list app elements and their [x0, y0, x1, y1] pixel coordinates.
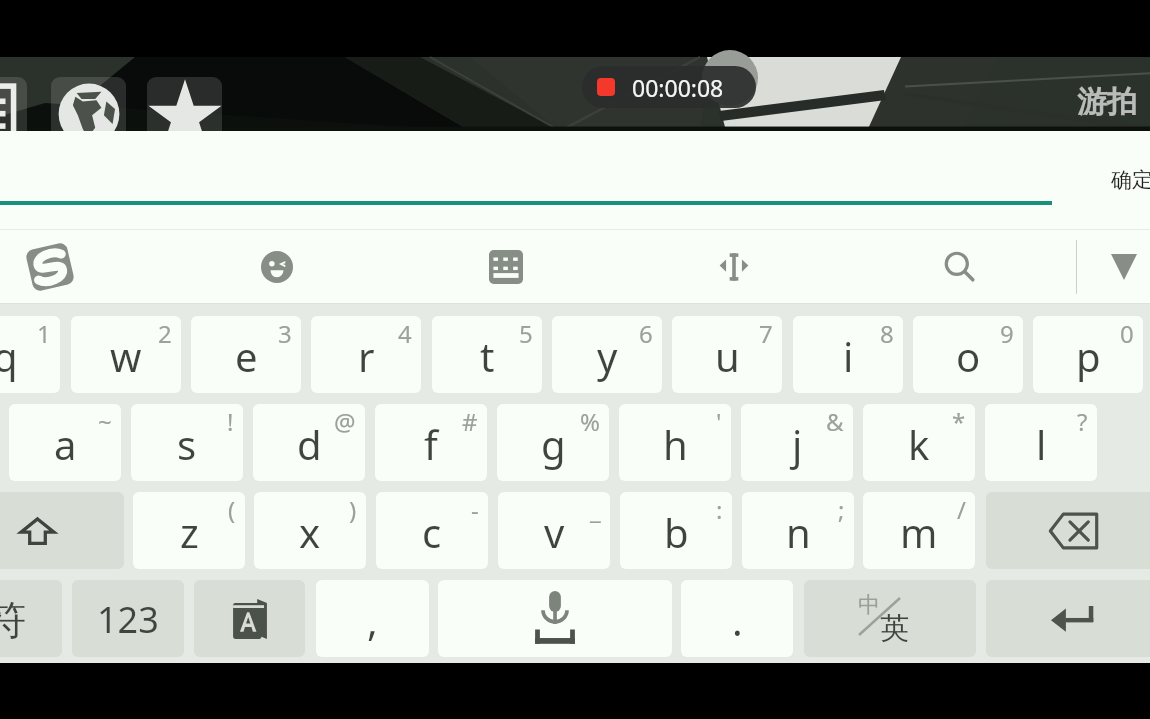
- staticText: 6: [639, 317, 653, 350]
- button[interactable]: h: [619, 404, 731, 481]
- staticText: -: [471, 493, 479, 526]
- staticText: !: [227, 405, 234, 438]
- staticText: 游拍: [1077, 83, 1137, 121]
- staticText: c: [422, 505, 442, 559]
- staticText: w: [110, 329, 142, 383]
- staticText: b: [664, 505, 689, 559]
- staticText: 符: [0, 595, 26, 645]
- staticText: /: [957, 493, 966, 526]
- staticText: ): [349, 493, 357, 526]
- button[interactable]: 确定: [1100, 153, 1150, 207]
- button[interactable]: m: [863, 492, 975, 569]
- staticText: 3: [278, 317, 292, 350]
- button[interactable]: 123: [72, 580, 184, 657]
- button[interactable]: t: [432, 316, 542, 393]
- staticText: 123: [97, 595, 159, 644]
- staticText: ~: [98, 405, 112, 438]
- button[interactable]: cn: [804, 580, 976, 657]
- staticText: k: [908, 417, 930, 471]
- staticText: d: [297, 417, 322, 471]
- button[interactable]: k: [863, 404, 975, 481]
- button[interactable]: u: [672, 316, 782, 393]
- staticText: o: [956, 329, 981, 383]
- staticText: x: [299, 505, 321, 559]
- staticText: e: [235, 329, 258, 383]
- staticText: 1: [37, 317, 51, 350]
- staticText: _: [590, 493, 601, 526]
- staticText: (: [228, 493, 236, 526]
- button[interactable]: 符: [0, 580, 62, 657]
- button[interactable]: Move cursor: [710, 243, 758, 291]
- staticText: m: [900, 505, 938, 559]
- staticText: 2: [158, 317, 172, 350]
- staticText: i: [843, 329, 854, 383]
- button[interactable]: g: [497, 404, 609, 481]
- button[interactable]: d: [253, 404, 365, 481]
- staticText: 8: [880, 317, 894, 350]
- staticText: t: [480, 329, 495, 383]
- staticText: n: [786, 505, 811, 559]
- staticText: g: [541, 417, 566, 471]
- button[interactable]: l: [985, 404, 1097, 481]
- button[interactable]: w: [71, 316, 181, 393]
- button[interactable]: .: [681, 580, 793, 657]
- button[interactable]: space: [438, 580, 672, 657]
- button[interactable]: i: [793, 316, 903, 393]
- button[interactable]: r: [311, 316, 421, 393]
- button[interactable]: f: [375, 404, 487, 481]
- staticText: a: [54, 417, 77, 471]
- button[interactable]: az: [194, 580, 305, 657]
- button[interactable]: Recording timer: [582, 66, 756, 108]
- button[interactable]: Sogou menu: [29, 246, 71, 288]
- staticText: 4: [398, 317, 412, 350]
- staticText: 5: [519, 317, 533, 350]
- button[interactable]: Hide keyboard: [1100, 243, 1148, 291]
- staticText: 确定: [1111, 167, 1150, 193]
- staticText: v: [544, 505, 565, 559]
- staticText: ;: [838, 493, 845, 526]
- button[interactable]: q: [0, 316, 60, 393]
- staticText: u: [715, 329, 740, 383]
- button[interactable]: z: [133, 492, 245, 569]
- button[interactable]: App shortcut: [0, 77, 27, 151]
- button[interactable]: Emoji: [253, 243, 301, 291]
- button[interactable]: e: [191, 316, 301, 393]
- button[interactable]: y: [552, 316, 662, 393]
- button[interactable]: b: [620, 492, 732, 569]
- staticText: #: [462, 405, 478, 438]
- staticText: q: [0, 329, 18, 383]
- staticText: ': [716, 405, 722, 438]
- staticText: ,: [367, 593, 378, 647]
- staticText: &: [826, 405, 844, 438]
- button[interactable]: j: [741, 404, 853, 481]
- staticText: f: [424, 417, 438, 471]
- staticText: h: [663, 417, 688, 471]
- button[interactable]: enter: [986, 580, 1150, 657]
- button[interactable]: s: [131, 404, 243, 481]
- button[interactable]: App shortcut: [51, 77, 126, 151]
- button[interactable]: Keyboard layout: [482, 243, 530, 291]
- button[interactable]: n: [742, 492, 854, 569]
- staticText: z: [180, 505, 199, 559]
- staticText: p: [1076, 329, 1101, 383]
- staticText: :: [716, 493, 723, 526]
- button[interactable]: v: [498, 492, 610, 569]
- staticText: l: [1036, 417, 1047, 471]
- button[interactable]: c: [376, 492, 488, 569]
- button[interactable]: a: [9, 404, 121, 481]
- button[interactable]: o: [913, 316, 1023, 393]
- button[interactable]: p: [1033, 316, 1143, 393]
- button[interactable]: ,: [316, 580, 429, 657]
- staticText: .: [732, 593, 743, 647]
- staticText: %: [580, 405, 600, 438]
- button[interactable]: Search: [936, 243, 984, 291]
- button[interactable]: x: [254, 492, 366, 569]
- staticText: r: [358, 329, 375, 383]
- button[interactable]: shift: [0, 492, 124, 569]
- staticText: j: [792, 417, 803, 471]
- staticText: 中: [858, 591, 880, 619]
- staticText: 7: [759, 317, 773, 350]
- button[interactable]: App shortcut: [147, 77, 222, 151]
- staticText: *: [952, 405, 966, 438]
- button[interactable]: back: [986, 492, 1150, 569]
